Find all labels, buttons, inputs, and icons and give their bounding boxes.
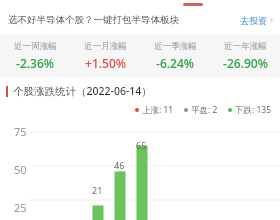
staticText: 75 [14, 124, 27, 139]
staticText: -2.36% [16, 55, 54, 71]
button[interactable]: 近一周涨幅 [0, 41, 70, 71]
staticText: 21 [92, 184, 103, 196]
button[interactable]: 近一月涨幅 [70, 41, 140, 71]
staticText: 65 [136, 139, 147, 151]
staticText: 平盘: 2 [191, 104, 218, 116]
staticText: 近一年涨幅 [224, 41, 267, 52]
staticText: -26.90% [223, 55, 268, 71]
staticText: 46 [114, 159, 125, 171]
button[interactable]: 近一季涨幅 [140, 41, 210, 71]
staticText: 上涨: 11 [142, 104, 174, 116]
staticText: 近一周涨幅 [14, 41, 57, 52]
button[interactable]: 选不好半导体个股？一键打包半导体板块 [0, 8, 280, 32]
staticText: 个股涨跌统计（2022-06-14） [13, 84, 152, 98]
staticText: 近一季涨幅 [154, 41, 197, 52]
button[interactable]: 近一年涨幅 [210, 41, 280, 71]
staticText: 去投资 [240, 15, 267, 26]
staticText: 50 [14, 162, 27, 177]
staticText: +1.50% [85, 55, 126, 71]
staticText: 近一月涨幅 [84, 41, 127, 52]
staticText: 25 [14, 200, 27, 215]
staticText: -6.24% [156, 55, 194, 71]
staticText: 下跌: 135 [235, 104, 272, 116]
staticText: 选不好半导体个股？一键打包半导体板块 [8, 14, 179, 26]
